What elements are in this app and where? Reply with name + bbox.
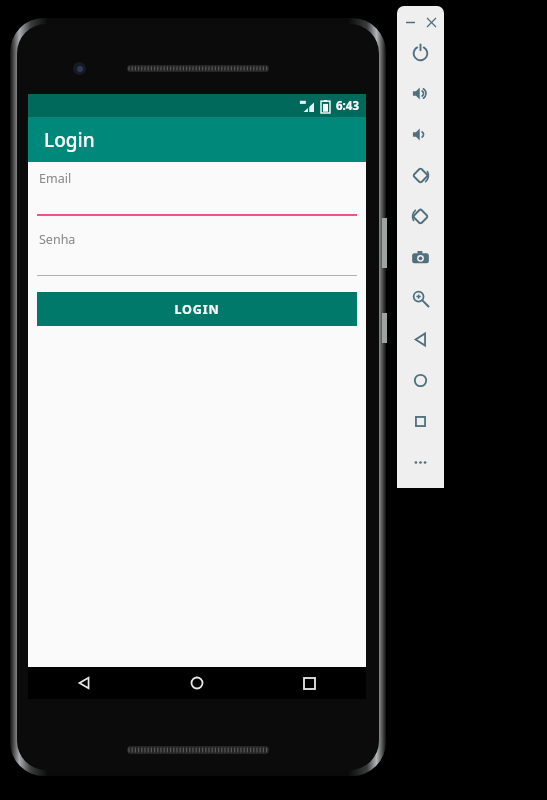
button[interactable]: Back xyxy=(408,327,433,352)
staticText: Login xyxy=(44,127,95,153)
button[interactable]: Close xyxy=(423,14,439,30)
button[interactable]: Home xyxy=(140,667,253,699)
staticText: Senha xyxy=(39,231,76,248)
button[interactable]: LOGIN xyxy=(37,292,357,326)
button[interactable]: Rotate right xyxy=(408,204,433,229)
button[interactable]: Rotate left xyxy=(408,163,433,188)
button[interactable]: Overview xyxy=(408,409,433,434)
button[interactable]: Home xyxy=(408,368,433,393)
button[interactable]: Minimize xyxy=(402,14,418,30)
button[interactable]: Volume up xyxy=(408,81,433,106)
button[interactable]: Email xyxy=(37,170,357,216)
button[interactable]: Volume down xyxy=(408,122,433,147)
button[interactable]: Zoom xyxy=(408,286,433,311)
button[interactable]: Back xyxy=(28,667,140,699)
button[interactable]: Power xyxy=(408,40,433,65)
button[interactable]: Screenshot xyxy=(408,245,433,270)
staticText: 6:43 xyxy=(336,98,359,114)
staticText: LOGIN xyxy=(174,301,220,318)
staticText: Email xyxy=(39,170,72,187)
button[interactable]: Overview xyxy=(253,667,366,699)
button[interactable]: Senha xyxy=(37,231,357,276)
button[interactable]: More xyxy=(408,450,433,475)
